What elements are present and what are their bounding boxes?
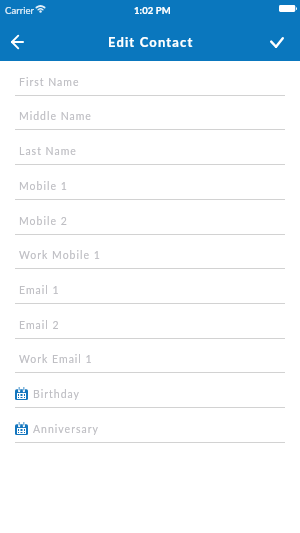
staticText: Last Name xyxy=(19,145,77,158)
button[interactable]: Work Email 1 xyxy=(0,0,300,373)
button[interactable]: Email 1 xyxy=(0,0,300,304)
staticText: Work Mobile 1 xyxy=(19,249,101,262)
button[interactable]: Middle Name xyxy=(0,0,300,130)
staticText: Carrier xyxy=(5,5,35,16)
button[interactable]: Anniversary xyxy=(0,0,300,443)
staticText: Work Email 1 xyxy=(19,353,93,366)
staticText: First Name xyxy=(19,76,80,89)
button[interactable]: Email 2 xyxy=(0,0,300,339)
staticText: Middle Name xyxy=(19,110,92,123)
button[interactable]: Mobile 2 xyxy=(0,0,300,235)
button[interactable]: Birthday xyxy=(0,0,300,408)
staticText: 1:02 PM xyxy=(134,5,171,16)
button[interactable]: Back xyxy=(0,21,34,62)
button[interactable]: Work Mobile 1 xyxy=(0,0,300,269)
button[interactable]: Mobile 1 xyxy=(0,0,300,200)
staticText: Anniversary xyxy=(33,423,99,436)
staticText: Email 1 xyxy=(19,284,60,297)
staticText: Mobile 1 xyxy=(19,180,68,193)
button[interactable]: Save xyxy=(254,22,300,63)
staticText: Edit Contact xyxy=(108,34,194,50)
staticText: Birthday xyxy=(33,388,81,401)
staticText: Mobile 2 xyxy=(19,215,68,228)
staticText: Email 2 xyxy=(19,319,60,332)
button[interactable]: Last Name xyxy=(0,0,300,165)
button[interactable]: First Name xyxy=(0,0,300,96)
